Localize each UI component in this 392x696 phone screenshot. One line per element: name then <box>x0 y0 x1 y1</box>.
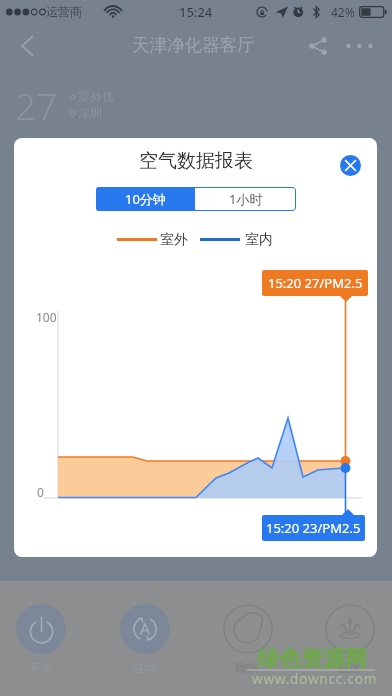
button[interactable]: 1小时 <box>195 187 296 211</box>
staticText: 0 <box>37 484 44 500</box>
staticText: 开关 <box>28 660 52 675</box>
staticText: 室外优 <box>78 89 114 104</box>
staticText: 100 <box>36 309 57 325</box>
staticText: 运营商 <box>46 4 82 19</box>
staticText: 空气数据报表 <box>139 149 253 173</box>
button[interactable]: 10分钟 <box>96 187 195 211</box>
button[interactable]: More options <box>337 24 381 68</box>
staticText: 极速 <box>337 660 361 675</box>
staticText: 室外 <box>160 231 188 249</box>
staticText: www.downcc.com <box>252 670 378 688</box>
staticText: 绿色资源网 <box>257 645 367 673</box>
staticText: 室内 <box>245 231 273 249</box>
staticText: 1小时 <box>229 190 263 208</box>
staticText: 10分钟 <box>125 190 166 208</box>
button[interactable]: 极速 <box>325 604 375 654</box>
button[interactable]: 睡眠 <box>223 604 273 654</box>
staticText: 42% <box>331 4 355 20</box>
button[interactable]: 自动 <box>120 604 170 654</box>
button[interactable]: Close <box>340 155 361 176</box>
staticText: 睡眠 <box>235 660 259 675</box>
staticText: 15:20 27/PM2.5 <box>268 274 363 292</box>
staticText: 自动 <box>132 660 156 675</box>
button[interactable]: 开关 <box>16 604 66 654</box>
staticText: 27 <box>15 80 58 130</box>
staticText: 15:24 <box>179 3 213 21</box>
staticText: 天津净化器客厅 <box>132 34 255 56</box>
staticText: 15:20 23/PM2.5 <box>266 519 361 537</box>
button[interactable]: Back <box>5 24 49 68</box>
button[interactable]: Share <box>300 24 336 68</box>
staticText: 深圳 <box>78 105 102 120</box>
